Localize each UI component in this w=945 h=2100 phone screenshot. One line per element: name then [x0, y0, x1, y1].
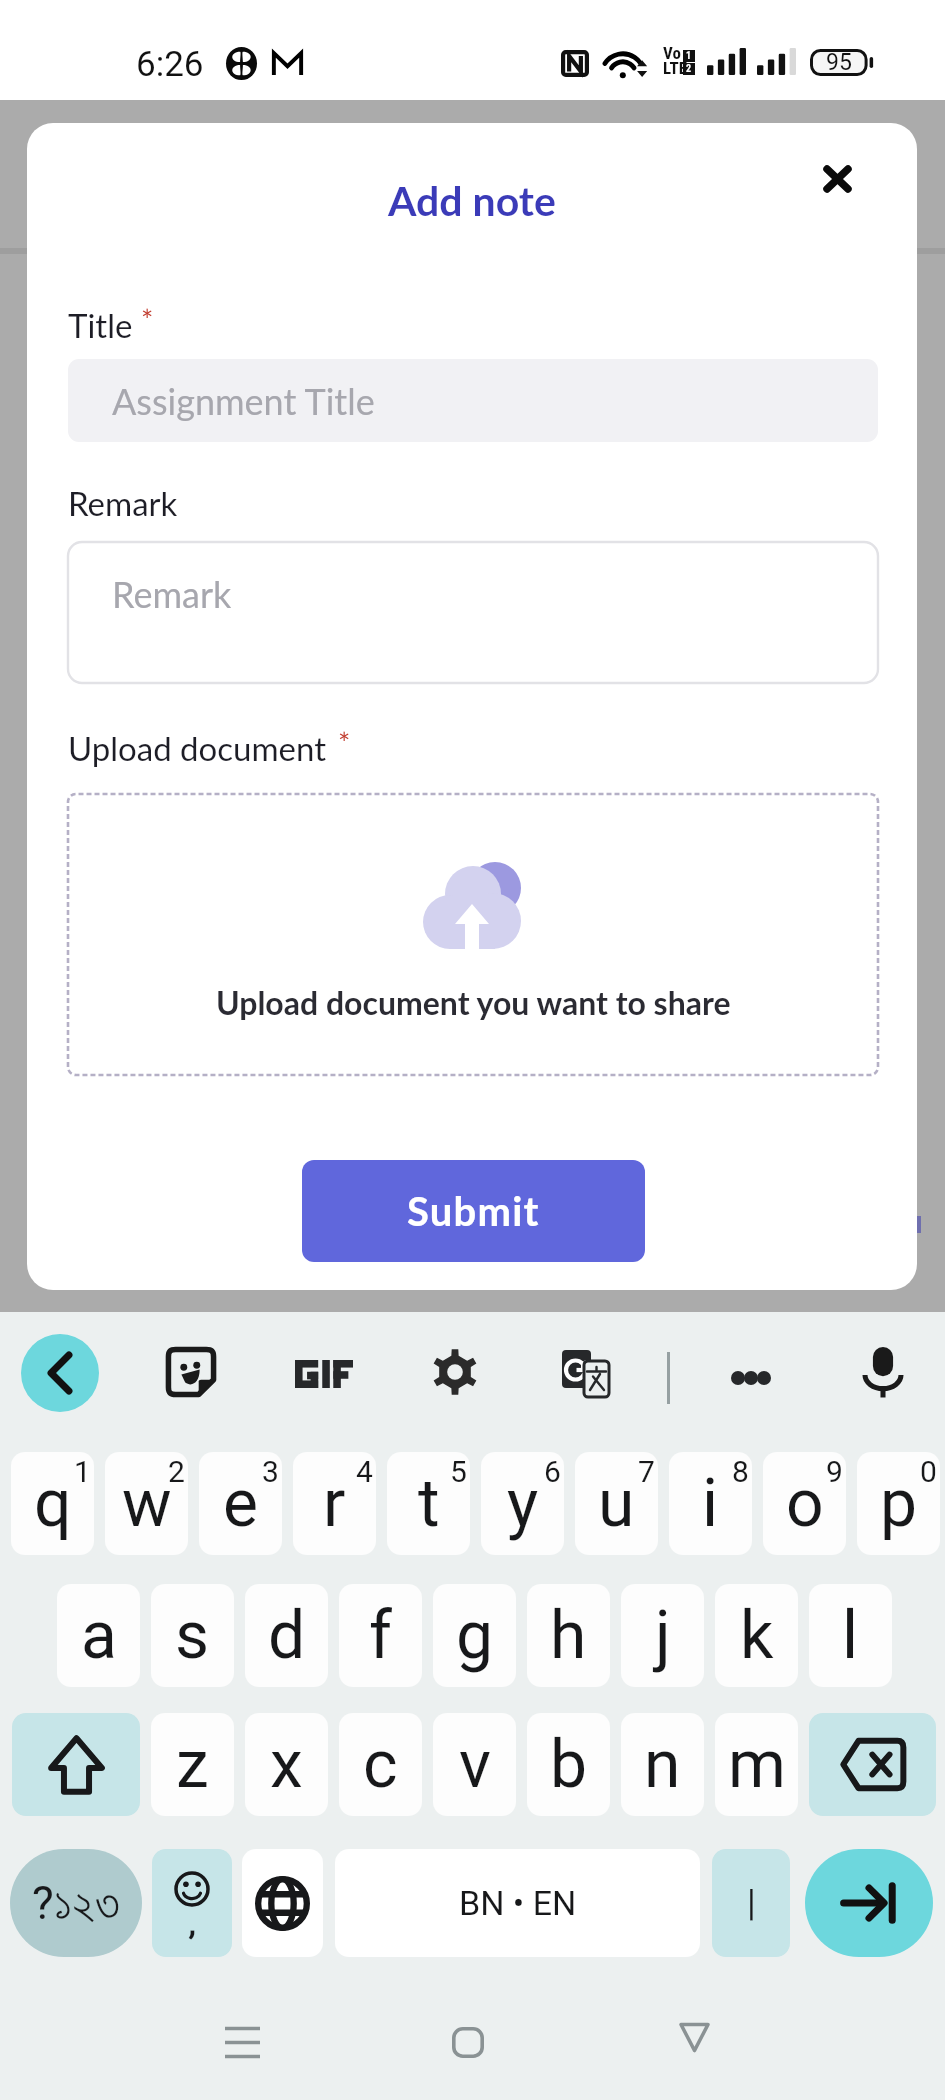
button[interactable]: Assignment Title	[68, 359, 878, 442]
staticText: 2	[168, 1454, 185, 1489]
staticText: l	[842, 1597, 859, 1674]
staticText: 6:26	[136, 44, 204, 85]
button[interactable]: Translate	[552, 1340, 620, 1408]
staticText: 9	[826, 1454, 843, 1489]
staticText: 4	[356, 1454, 373, 1489]
button[interactable]: o	[763, 1452, 846, 1555]
staticText: Remark	[112, 572, 232, 615]
button[interactable]: a	[57, 1584, 140, 1687]
button[interactable]: w	[105, 1452, 188, 1555]
button[interactable]: b	[527, 1713, 610, 1816]
staticText: v	[459, 1726, 491, 1803]
button[interactable]: More options	[712, 1352, 790, 1404]
staticText: Add note	[388, 176, 556, 225]
staticText: Upload document	[68, 728, 327, 768]
staticText: 6	[544, 1454, 561, 1489]
staticText: m	[728, 1726, 786, 1803]
staticText: 8	[732, 1454, 749, 1489]
staticText: b	[550, 1726, 588, 1803]
staticText: n	[644, 1726, 681, 1803]
button[interactable]: Back	[21, 1334, 99, 1412]
button[interactable]: q	[11, 1452, 94, 1555]
staticText: s	[175, 1597, 210, 1674]
staticText: p	[880, 1465, 918, 1542]
button[interactable]: Submit	[302, 1160, 645, 1262]
staticText: Vo	[663, 43, 681, 63]
staticText: LTE	[663, 58, 688, 78]
staticText: a	[81, 1597, 117, 1674]
button[interactable]: m	[715, 1713, 798, 1816]
staticText: |	[747, 1882, 756, 1924]
button[interactable]: r	[293, 1452, 376, 1555]
button[interactable]: y	[481, 1452, 564, 1555]
staticText: y	[507, 1465, 539, 1542]
staticText: d	[268, 1597, 306, 1674]
button[interactable]: Voice input	[853, 1342, 913, 1402]
staticText: Assignment Title	[112, 379, 375, 422]
button[interactable]: f	[339, 1584, 422, 1687]
button[interactable]: h	[527, 1584, 610, 1687]
button[interactable]: k	[715, 1584, 798, 1687]
staticText: h	[550, 1597, 587, 1674]
button[interactable]: z	[151, 1713, 234, 1816]
staticText: u	[598, 1465, 635, 1542]
button[interactable]: l	[809, 1584, 892, 1687]
staticText: Title	[68, 305, 133, 345]
button[interactable]: v	[433, 1713, 516, 1816]
button[interactable]: Upload document you want to share	[68, 794, 878, 1075]
button[interactable]: s	[151, 1584, 234, 1687]
button[interactable]: c	[339, 1713, 422, 1816]
button[interactable]: p	[857, 1452, 940, 1555]
staticText: ,	[189, 1904, 196, 1942]
staticText: j	[655, 1597, 671, 1674]
button[interactable]: j	[621, 1584, 704, 1687]
staticText: BN • EN	[459, 1883, 577, 1923]
button[interactable]: |	[712, 1849, 790, 1957]
button[interactable]: Shift	[12, 1713, 140, 1816]
staticText: *	[141, 302, 154, 337]
staticText: Upload document you want to share	[216, 983, 731, 1021]
button[interactable]: x	[245, 1713, 328, 1816]
button[interactable]: d	[245, 1584, 328, 1687]
button[interactable]: Change language	[242, 1849, 323, 1957]
button[interactable]: g	[433, 1584, 516, 1687]
staticText: k	[740, 1597, 774, 1674]
staticText: f	[369, 1597, 392, 1674]
staticText: g	[456, 1597, 494, 1674]
button[interactable]: BN • EN	[335, 1849, 700, 1957]
staticText: o	[786, 1465, 824, 1542]
button[interactable]: Backspace	[809, 1713, 936, 1816]
button[interactable]: e	[199, 1452, 282, 1555]
staticText: Submit	[407, 1187, 540, 1235]
staticText: 1	[74, 1454, 91, 1489]
button[interactable]: i	[669, 1452, 752, 1555]
staticText: Remark	[68, 483, 178, 523]
button[interactable]: Close	[805, 147, 869, 211]
button[interactable]: t	[387, 1452, 470, 1555]
staticText: 7	[638, 1454, 655, 1489]
button[interactable]: Home	[408, 1997, 528, 2087]
staticText: x	[270, 1726, 303, 1803]
staticText: 95	[826, 49, 852, 76]
button[interactable]: GIF	[288, 1340, 360, 1408]
staticText: 5	[450, 1454, 467, 1489]
staticText: c	[363, 1726, 398, 1803]
staticText: e	[223, 1465, 258, 1542]
staticText: t	[418, 1465, 440, 1542]
staticText: 2	[686, 63, 692, 75]
staticText: 1	[686, 50, 692, 62]
staticText: z	[176, 1726, 209, 1803]
staticText: *	[338, 725, 351, 760]
staticText: w	[122, 1465, 172, 1542]
button[interactable]: Remark	[68, 542, 878, 683]
staticText: i	[702, 1465, 719, 1542]
button[interactable]: Settings	[429, 1346, 481, 1398]
button[interactable]: u	[575, 1452, 658, 1555]
button[interactable]: ?১২৩	[10, 1849, 142, 1957]
button[interactable]: Enter	[805, 1849, 933, 1957]
button[interactable]: Back	[634, 1992, 754, 2082]
button[interactable]: n	[621, 1713, 704, 1816]
button[interactable]: ,	[152, 1849, 232, 1957]
button[interactable]: Recents	[182, 1997, 302, 2087]
staticText: 0	[920, 1454, 937, 1489]
